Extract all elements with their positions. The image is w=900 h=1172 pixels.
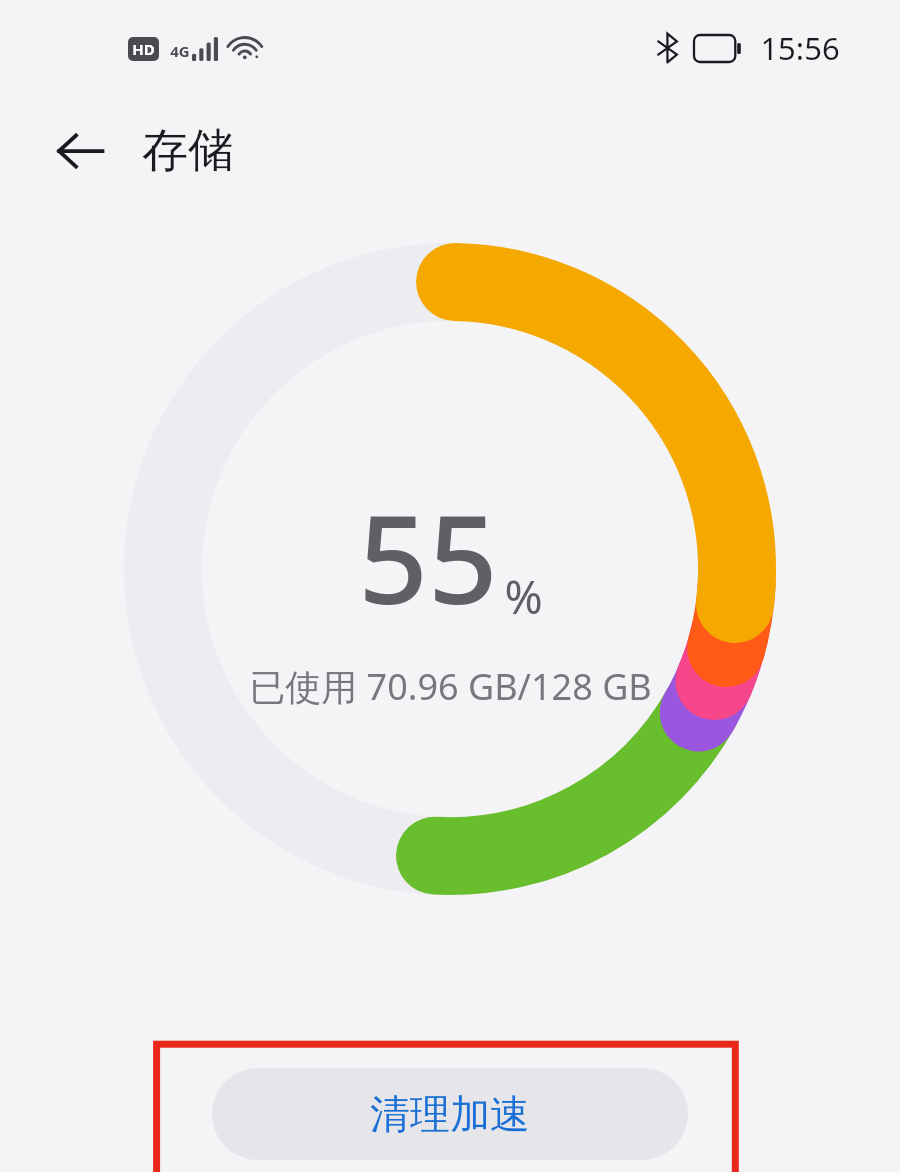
staticText: 4G — [170, 41, 190, 61]
button[interactable]: 清理加速 — [212, 1068, 688, 1160]
staticText: % — [504, 565, 543, 628]
button[interactable]: Back — [42, 113, 118, 189]
staticText: 55 — [358, 474, 498, 640]
staticText: 清理加速 — [370, 1089, 530, 1139]
staticText: 存储 — [142, 122, 234, 180]
staticText: HD — [132, 39, 155, 59]
staticText: 已使用 70.96 GB/128 GB — [249, 662, 652, 711]
staticText: 15:56 — [760, 27, 840, 69]
